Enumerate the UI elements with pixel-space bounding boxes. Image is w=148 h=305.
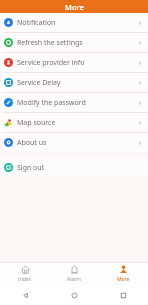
staticText: More [117, 276, 130, 283]
button[interactable]: Service Delay [0, 73, 148, 92]
button[interactable]: More [99, 263, 148, 285]
staticText: Refresh the settings [17, 38, 83, 48]
button[interactable]: Alarm [50, 263, 99, 285]
button[interactable]: Sign out [0, 158, 148, 177]
button[interactable]: Notification [0, 13, 148, 32]
staticText: More [65, 2, 84, 12]
button[interactable]: Map source [0, 113, 148, 132]
staticText: Index [18, 276, 32, 283]
button[interactable]: Index [0, 263, 50, 285]
button[interactable]: Refresh the settings [0, 33, 148, 52]
staticText: Map source [17, 118, 56, 128]
staticText: Modify the password [17, 98, 86, 108]
button[interactable]: Home [50, 285, 99, 305]
staticText: Notification [17, 18, 56, 28]
button[interactable]: About us [0, 133, 148, 152]
button[interactable]: Back [0, 285, 50, 305]
staticText: Service provider info [17, 58, 85, 68]
button[interactable]: Modify the password [0, 93, 148, 112]
staticText: Alarm [67, 276, 82, 283]
button[interactable]: Service provider info [0, 53, 148, 72]
staticText: About us [17, 138, 47, 148]
button[interactable]: Recents [99, 285, 148, 305]
staticText: Sign out [17, 163, 45, 173]
staticText: Service Delay [17, 78, 61, 88]
